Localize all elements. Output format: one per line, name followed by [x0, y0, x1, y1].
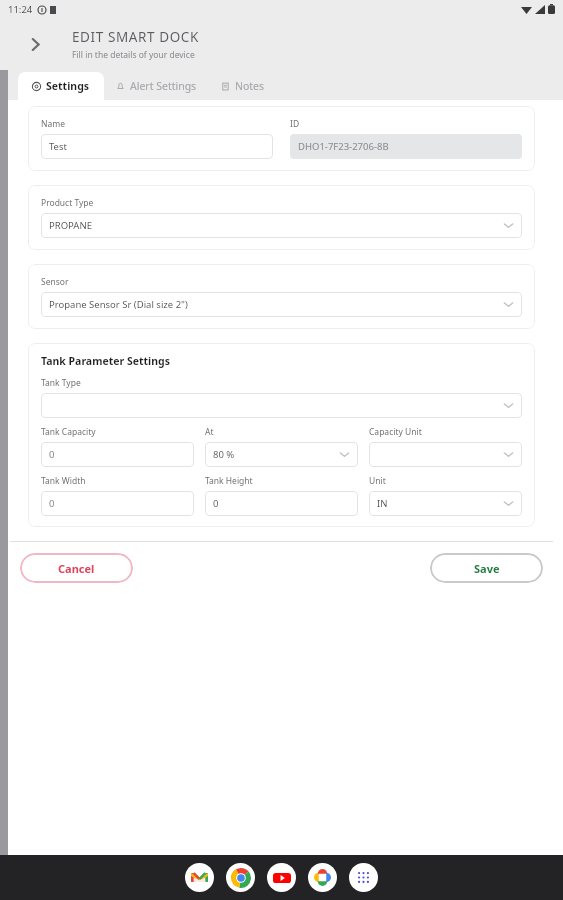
- button[interactable]: Photos: [308, 863, 337, 892]
- staticText: 80 %: [213, 448, 235, 461]
- staticText: Tank Type: [41, 377, 81, 389]
- staticText: At: [205, 426, 214, 438]
- button[interactable]: 0: [41, 442, 194, 467]
- staticText: Fill in the details of your device: [72, 49, 195, 61]
- button[interactable]: Cancel: [20, 553, 133, 583]
- staticText: Save: [474, 561, 500, 576]
- staticText: Tank Parameter Settings: [41, 354, 170, 368]
- staticText: Test: [49, 140, 67, 153]
- staticText: Tank Capacity: [41, 426, 96, 438]
- staticText: 11:24: [8, 3, 33, 16]
- button[interactable]: 80 %: [205, 442, 358, 467]
- button[interactable]: All apps: [349, 863, 378, 892]
- button[interactable]: 0: [41, 491, 194, 516]
- button[interactable]: DHO1-7F23-2706-8B: [290, 134, 522, 159]
- button[interactable]: Save: [430, 553, 543, 583]
- button[interactable]: [41, 393, 522, 418]
- staticText: Product Type: [41, 197, 94, 209]
- staticText: Settings: [46, 79, 90, 93]
- button[interactable]: Back: [18, 27, 52, 61]
- button[interactable]: [369, 442, 522, 467]
- staticText: Propane Sensor Sr (Dial size 2"): [49, 298, 188, 311]
- staticText: Tank Height: [205, 475, 253, 487]
- button[interactable]: PROPANE: [41, 213, 522, 238]
- staticText: EDIT SMART DOCK: [72, 28, 199, 46]
- button[interactable]: Notes: [209, 72, 277, 100]
- staticText: Tank Width: [41, 475, 86, 487]
- staticText: Alert Settings: [130, 79, 197, 93]
- button[interactable]: 0: [205, 491, 358, 516]
- staticText: Unit: [369, 475, 386, 487]
- staticText: 0: [49, 448, 55, 461]
- staticText: Cancel: [58, 561, 95, 576]
- staticText: Name: [41, 118, 65, 130]
- button[interactable]: IN: [369, 491, 522, 516]
- button[interactable]: YouTube: [267, 863, 296, 892]
- staticText: Sensor: [41, 276, 69, 288]
- staticText: Capacity Unit: [369, 426, 422, 438]
- button[interactable]: Settings: [18, 72, 104, 100]
- button[interactable]: Alert Settings: [104, 72, 209, 100]
- staticText: PROPANE: [49, 219, 92, 232]
- button[interactable]: Test: [41, 134, 273, 159]
- button[interactable]: Chrome: [226, 863, 255, 892]
- staticText: 0: [49, 497, 55, 510]
- staticText: 0: [213, 497, 219, 510]
- staticText: DHO1-7F23-2706-8B: [298, 140, 389, 153]
- button[interactable]: Gmail: [185, 863, 214, 892]
- staticText: Notes: [235, 79, 265, 93]
- staticText: ID: [290, 118, 300, 130]
- staticText: IN: [377, 497, 388, 510]
- button[interactable]: Propane Sensor Sr (Dial size 2"): [41, 292, 522, 317]
